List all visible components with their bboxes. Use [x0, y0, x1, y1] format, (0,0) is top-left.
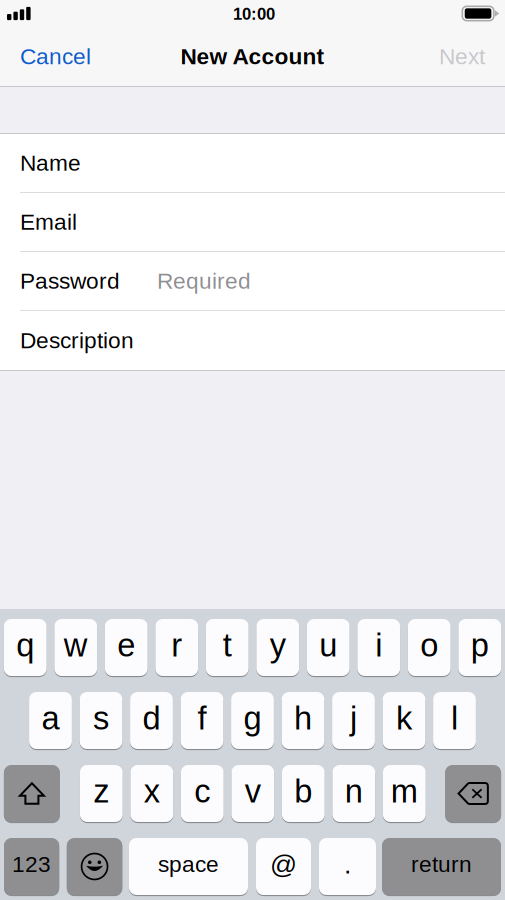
button[interactable]: w	[54, 618, 97, 677]
button[interactable]: s	[80, 691, 122, 750]
staticText: k	[396, 700, 412, 736]
button[interactable]: q	[4, 618, 47, 677]
staticText: @	[270, 849, 297, 879]
button[interactable]: g	[231, 691, 274, 750]
staticText: f	[197, 700, 206, 736]
staticText: w	[64, 627, 88, 663]
staticText: 123	[12, 851, 51, 877]
button[interactable]: d	[130, 691, 173, 750]
button[interactable]: space	[129, 837, 248, 896]
staticText: v	[245, 773, 261, 809]
button[interactable]: Emoji	[67, 837, 122, 896]
button[interactable]: Delete	[445, 764, 501, 823]
staticText: g	[243, 700, 261, 736]
staticText: 10:00	[233, 5, 275, 23]
staticText: t	[223, 627, 232, 663]
button[interactable]: Name	[0, 134, 505, 193]
staticText: e	[117, 627, 135, 663]
button[interactable]: k	[383, 691, 425, 750]
button[interactable]: Description	[0, 311, 505, 370]
button[interactable]: j	[332, 691, 375, 750]
button[interactable]: Cancel	[0, 27, 111, 86]
staticText: Password	[20, 268, 120, 294]
staticText: o	[420, 627, 438, 663]
staticText: i	[375, 627, 382, 663]
button[interactable]: @	[256, 837, 311, 896]
staticText: m	[391, 773, 418, 809]
staticText: j	[350, 700, 357, 736]
staticText: Required	[157, 268, 251, 294]
staticText: h	[294, 700, 312, 736]
button[interactable]: n	[332, 764, 375, 823]
staticText: Next	[439, 44, 485, 69]
button[interactable]: Email	[0, 193, 505, 252]
button[interactable]: r	[155, 618, 198, 677]
button[interactable]: z	[80, 764, 123, 823]
button[interactable]: c	[181, 764, 224, 823]
button[interactable]: return	[382, 837, 501, 896]
button[interactable]: v	[231, 764, 274, 823]
staticText: n	[345, 773, 363, 809]
staticText: s	[93, 700, 109, 736]
staticText: p	[471, 627, 489, 663]
staticText: q	[16, 627, 34, 663]
staticText: u	[319, 627, 337, 663]
staticText: Cancel	[20, 44, 91, 69]
staticText: z	[93, 773, 109, 809]
staticText: b	[294, 773, 312, 809]
button[interactable]: h	[282, 691, 324, 750]
button[interactable]: .	[319, 837, 376, 896]
staticText: d	[142, 700, 160, 736]
staticText: Name	[20, 150, 81, 176]
button[interactable]: t	[206, 618, 249, 677]
staticText: y	[270, 627, 286, 663]
button[interactable]: a	[29, 691, 72, 750]
staticText: .	[344, 849, 351, 879]
staticText: r	[171, 627, 182, 663]
staticText: New Account	[180, 44, 324, 69]
button[interactable]: f	[181, 691, 223, 750]
button[interactable]: Password	[0, 252, 505, 311]
button[interactable]: y	[256, 618, 299, 677]
button[interactable]: i	[357, 618, 400, 677]
button[interactable]: b	[282, 764, 325, 823]
button[interactable]: 123	[4, 837, 59, 896]
button[interactable]: u	[307, 618, 350, 677]
button[interactable]: o	[408, 618, 451, 677]
staticText: c	[194, 773, 210, 809]
button[interactable]: e	[105, 618, 148, 677]
button[interactable]: Shift	[4, 764, 60, 823]
staticText: Description	[20, 328, 134, 353]
button[interactable]: p	[458, 618, 501, 677]
button[interactable]: l	[433, 691, 476, 750]
button[interactable]: Next	[419, 27, 505, 86]
staticText: space	[158, 851, 219, 877]
staticText: return	[411, 851, 472, 877]
button[interactable]: x	[130, 764, 173, 823]
staticText: l	[451, 700, 458, 736]
staticText: Email	[20, 209, 77, 235]
staticText: a	[41, 700, 59, 736]
button[interactable]: m	[383, 764, 426, 823]
staticText: x	[144, 773, 160, 809]
